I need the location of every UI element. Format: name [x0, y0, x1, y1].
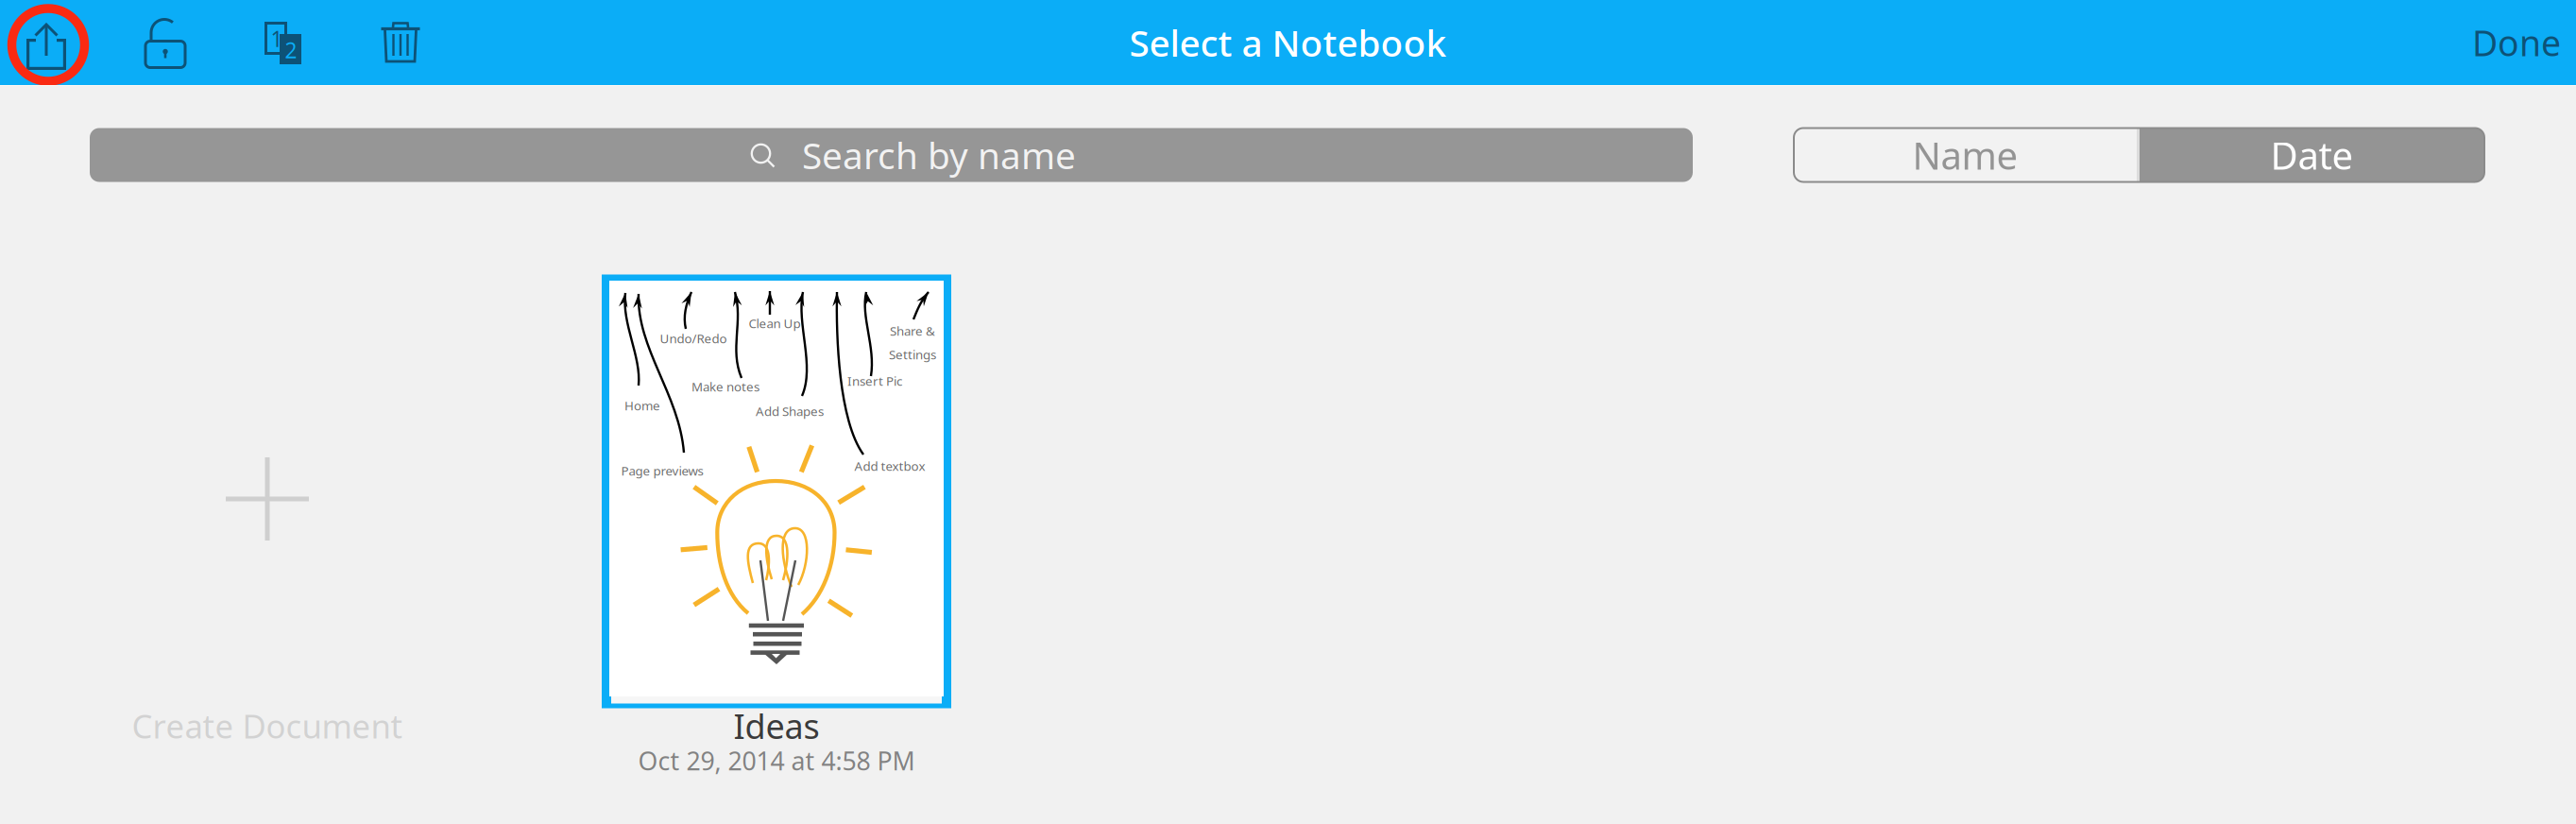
staticText: Insert Pic [847, 372, 902, 389]
staticText: Name [1912, 130, 2018, 180]
staticText: Date [2270, 130, 2354, 180]
staticText: Make notes [691, 378, 759, 395]
staticText: Add Shapes [756, 403, 824, 419]
staticText: Search by name [802, 131, 1076, 179]
button[interactable]: Lock notebook [126, 0, 211, 85]
button[interactable]: Page count [241, 0, 326, 85]
staticText: Page previews [621, 462, 703, 479]
button[interactable]: Delete [358, 0, 443, 85]
staticText: Settings [889, 346, 936, 363]
staticText: Home [624, 397, 660, 414]
staticText: Clean Up [749, 315, 801, 331]
button[interactable]: Name [1794, 128, 2137, 182]
staticText: Create Document [132, 704, 403, 747]
staticText: Oct 29, 2014 at 4:58 PM [638, 744, 915, 777]
staticText: 1 [271, 24, 283, 53]
button[interactable]: Date [2140, 128, 2484, 182]
button[interactable]: Search by name [90, 128, 1693, 182]
button[interactable]: Share [0, 0, 85, 85]
button[interactable]: Home [554, 274, 998, 803]
staticText: Select a Notebook [1129, 18, 1447, 67]
staticText: Share & [890, 322, 935, 339]
staticText: Ideas [734, 703, 819, 748]
staticText: Add textbox [854, 457, 925, 474]
button[interactable]: Done [2457, 0, 2576, 85]
staticText: Done [2472, 19, 2561, 66]
staticText: 2 [285, 36, 297, 64]
staticText: Undo/Redo [660, 330, 727, 347]
button[interactable]: Create Document [45, 274, 489, 803]
